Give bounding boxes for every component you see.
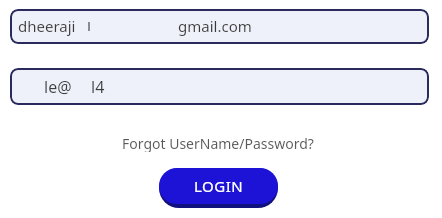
staticText: gmail.com: [178, 16, 252, 36]
button[interactable]: LOGIN: [159, 168, 278, 204]
button[interactable]: Forgot UserName/Password?: [0, 134, 439, 152]
staticText: dheeraji: [18, 16, 76, 36]
staticText: LOGIN: [194, 176, 244, 196]
staticText: le@: [44, 76, 72, 98]
staticText: Forgot UserName/Password?: [122, 134, 314, 152]
button[interactable]: le@: [10, 68, 429, 105]
button[interactable]: dheeraji: [10, 9, 429, 44]
staticText: l4: [91, 76, 105, 98]
